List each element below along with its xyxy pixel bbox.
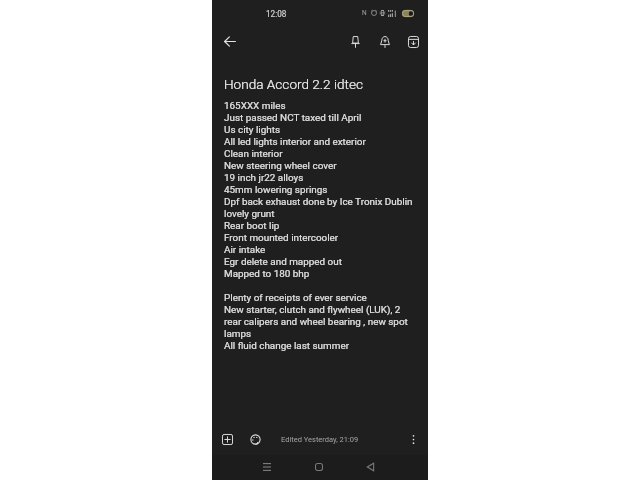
button[interactable]: Recent apps xyxy=(256,456,278,478)
button[interactable]: Back xyxy=(359,456,381,478)
button[interactable]: More options xyxy=(401,427,425,451)
button[interactable]: Reminder xyxy=(373,30,396,53)
staticText: 165XXX miles Just passed NCT taxed till … xyxy=(224,100,417,352)
staticText: 12:08 xyxy=(266,9,287,19)
staticText: Honda Accord 2.2 idtec xyxy=(224,76,363,92)
button[interactable]: Home xyxy=(308,456,330,478)
button[interactable]: Archive xyxy=(402,30,425,53)
button[interactable]: Navigate up xyxy=(218,30,241,53)
button[interactable]: Pin note xyxy=(344,30,367,53)
button[interactable]: Add xyxy=(215,427,239,451)
button[interactable]: Change colour xyxy=(243,427,267,451)
staticText: Edited Yesterday, 21:09 xyxy=(281,435,359,444)
staticText: N xyxy=(362,9,367,17)
